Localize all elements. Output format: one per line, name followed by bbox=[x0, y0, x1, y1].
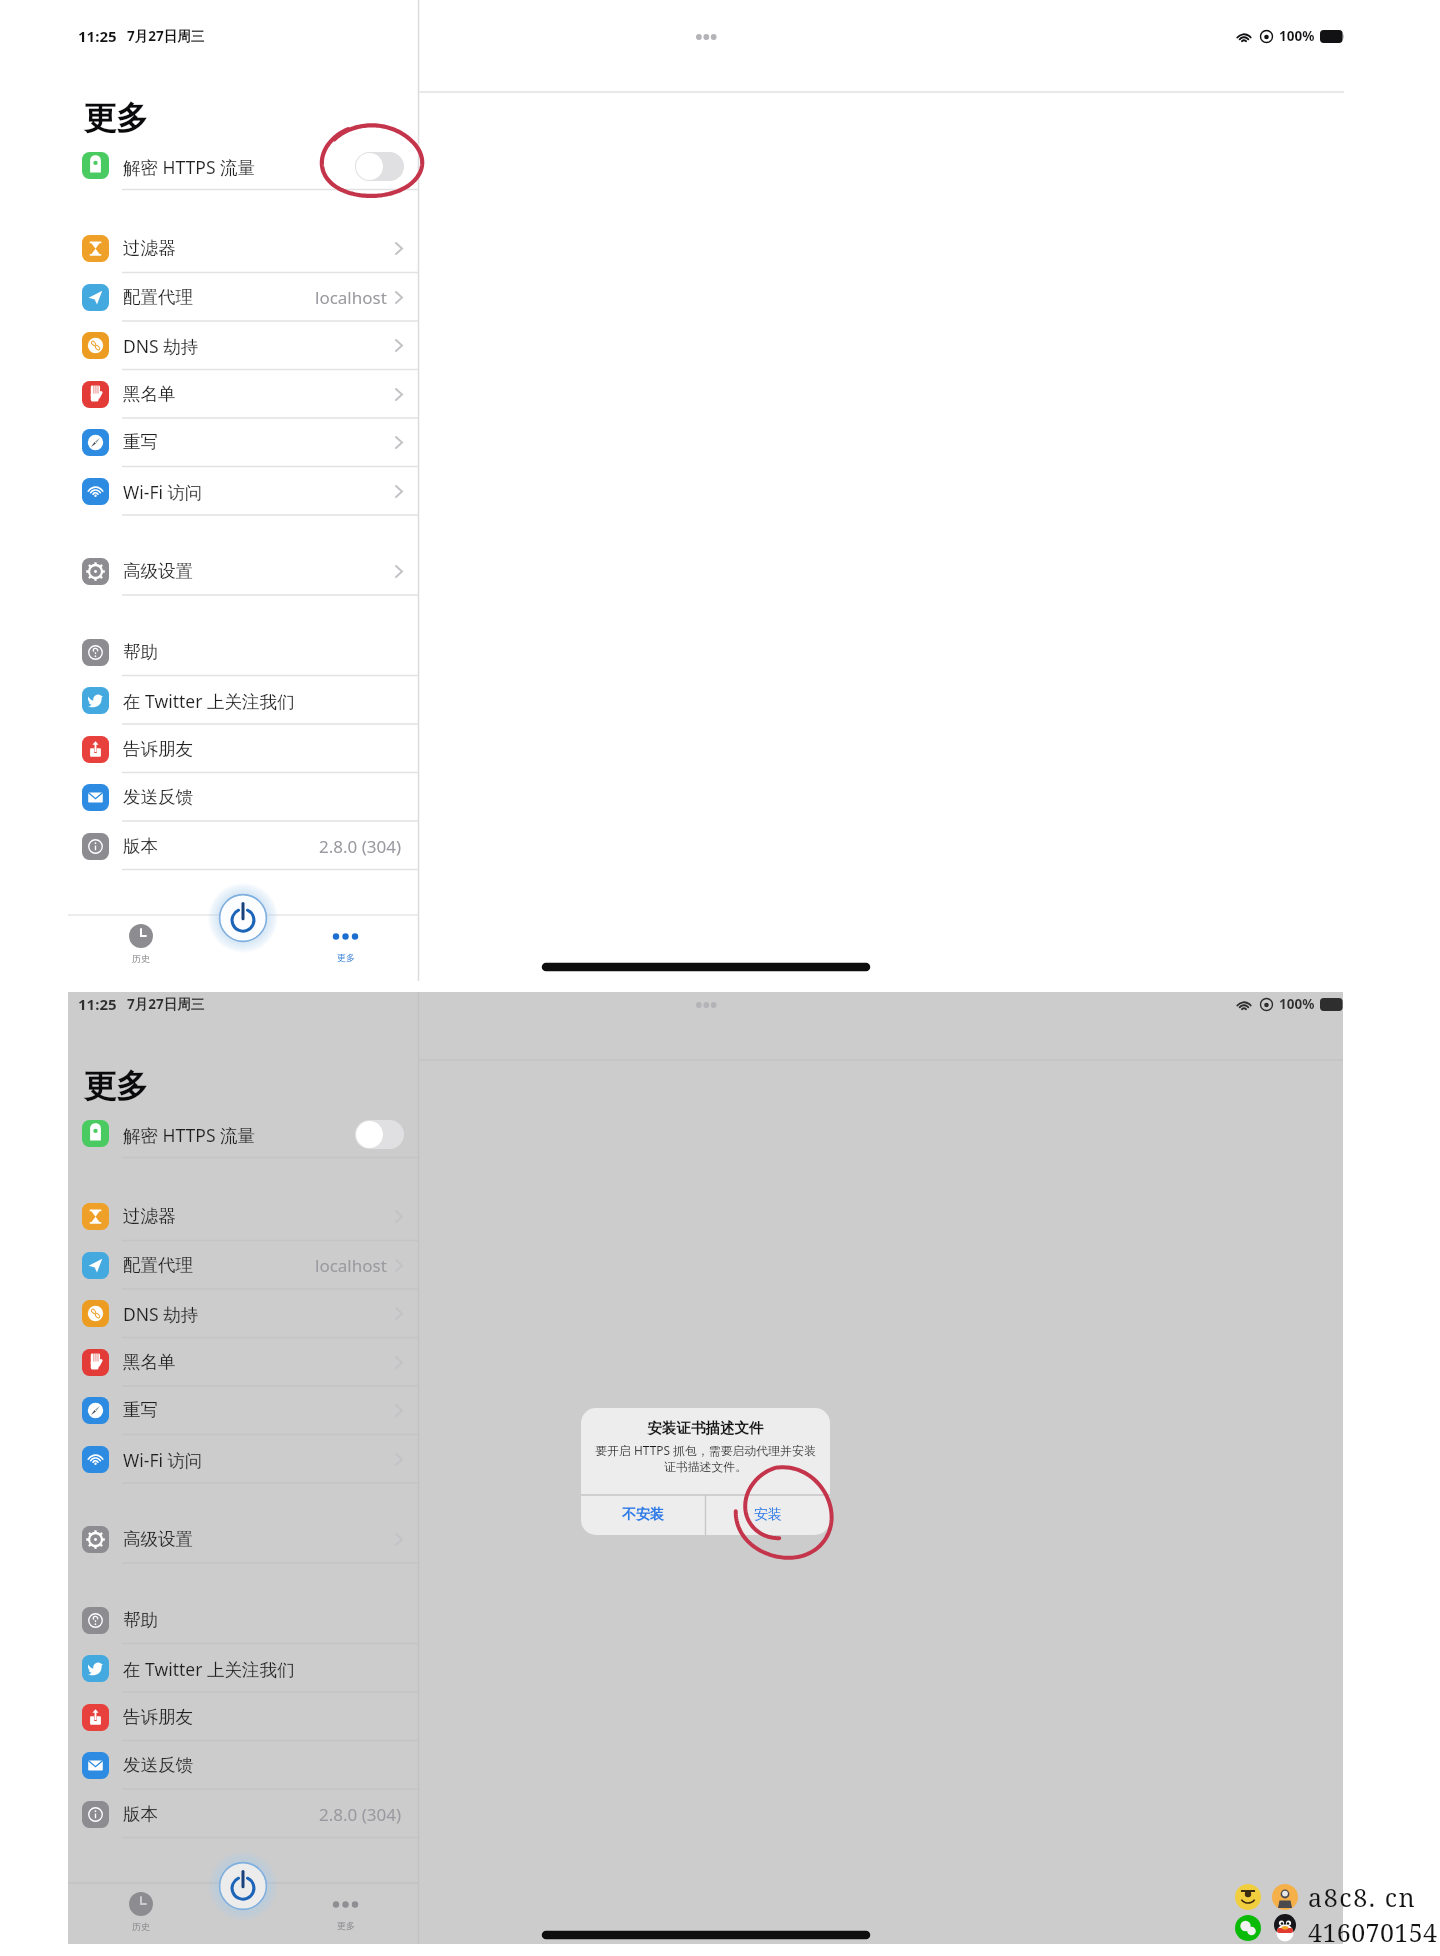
button[interactable]: 过滤器 bbox=[68, 1193, 418, 1239]
button[interactable]: 解密 HTTPS 流量 开关 bbox=[68, 143, 418, 189]
button[interactable]: 黑名单 bbox=[68, 1339, 418, 1385]
staticText: Wi-Fi 访问 bbox=[123, 1448, 203, 1472]
button[interactable]: 安装 bbox=[705, 1495, 830, 1535]
staticText: 416070154 bbox=[1308, 1915, 1438, 1949]
button[interactable]: 发送反馈 bbox=[68, 774, 418, 820]
button[interactable]: 历史 bbox=[82, 914, 200, 972]
button[interactable]: 高级设置 bbox=[68, 1516, 418, 1562]
button[interactable]: 重写 bbox=[68, 1387, 418, 1433]
staticText: 版本 bbox=[123, 835, 158, 857]
staticText: 告诉朋友 bbox=[123, 738, 193, 760]
button[interactable]: 帮助 bbox=[68, 1597, 418, 1643]
staticText: 版本 bbox=[123, 1803, 158, 1825]
staticText: 高级设置 bbox=[123, 560, 193, 582]
button[interactable]: 配置代理 bbox=[68, 1242, 418, 1288]
button[interactable]: Wi-Fi 访问 bbox=[68, 1436, 418, 1482]
staticText: 配置代理 bbox=[123, 286, 193, 308]
staticText: 帮助 bbox=[123, 641, 158, 663]
button[interactable]: 更多 bbox=[286, 916, 404, 974]
staticText: 高级设置 bbox=[123, 1528, 193, 1550]
staticText: 要开启 HTTPS 抓包，需要启动代理并安装证书描述文件。 bbox=[591, 1442, 820, 1474]
button[interactable]: 告诉朋友 bbox=[68, 1694, 418, 1740]
staticText: 解密 HTTPS 流量 bbox=[123, 155, 256, 179]
staticText: localhost bbox=[315, 286, 387, 309]
staticText: 黑名单 bbox=[123, 1351, 176, 1373]
staticText: 7月27日周三 bbox=[127, 995, 205, 1013]
staticText: 黑名单 bbox=[123, 383, 176, 405]
button[interactable]: 帮助 bbox=[68, 629, 418, 675]
button[interactable]: 高级设置 bbox=[68, 548, 418, 594]
staticText: 配置代理 bbox=[123, 1254, 193, 1276]
button[interactable]: 版本 bbox=[68, 1791, 418, 1837]
staticText: 过滤器 bbox=[123, 237, 176, 259]
button[interactable]: 解密 HTTPS 流量 开关 bbox=[68, 1111, 418, 1157]
staticText: 过滤器 bbox=[123, 1205, 176, 1227]
staticText: 2.8.0 (304) bbox=[319, 835, 402, 858]
staticText: 不安装 bbox=[622, 1506, 664, 1524]
staticText: 安装证书描述文件 bbox=[581, 1419, 830, 1437]
button[interactable]: 历史 bbox=[82, 1882, 200, 1940]
staticText: 2.8.0 (304) bbox=[319, 1803, 402, 1826]
staticText: 帮助 bbox=[123, 1609, 158, 1631]
button[interactable]: 在 Twitter 上关注我们 bbox=[68, 1645, 418, 1691]
button[interactable]: 电源开关 bbox=[207, 1850, 279, 1922]
button[interactable]: 发送反馈 bbox=[68, 1742, 418, 1788]
button[interactable]: 配置代理 bbox=[68, 274, 418, 320]
staticText: a8c8. cn bbox=[1308, 1880, 1417, 1914]
staticText: DNS 劫持 bbox=[123, 334, 199, 358]
staticText: localhost bbox=[315, 1254, 387, 1277]
staticText: 解密 HTTPS 流量 bbox=[123, 1123, 256, 1147]
button[interactable]: 不安装 bbox=[581, 1495, 705, 1535]
button[interactable]: 版本 bbox=[68, 823, 418, 869]
button[interactable]: DNS 劫持 bbox=[68, 322, 418, 368]
staticText: 重写 bbox=[123, 431, 158, 453]
staticText: 历史 bbox=[132, 1921, 150, 1932]
staticText: 安装 bbox=[754, 1506, 782, 1524]
button[interactable]: 更多 bbox=[286, 1884, 404, 1942]
staticText: DNS 劫持 bbox=[123, 1302, 199, 1326]
button[interactable]: 告诉朋友 bbox=[68, 726, 418, 772]
staticText: 发送反馈 bbox=[123, 786, 193, 808]
staticText: 在 Twitter 上关注我们 bbox=[123, 689, 295, 713]
staticText: 告诉朋友 bbox=[123, 1706, 193, 1728]
button[interactable]: 重写 bbox=[68, 419, 418, 465]
staticText: 发送反馈 bbox=[123, 1754, 193, 1776]
staticText: 更多 bbox=[337, 952, 355, 963]
button[interactable]: DNS 劫持 bbox=[68, 1290, 418, 1336]
button[interactable]: 过滤器 bbox=[68, 225, 418, 271]
staticText: 100% bbox=[1279, 27, 1315, 45]
staticText: 更多 bbox=[84, 98, 148, 138]
button[interactable]: Wi-Fi 访问 bbox=[68, 468, 418, 514]
button[interactable]: 电源开关 bbox=[207, 882, 279, 954]
staticText: 11:25 bbox=[78, 26, 117, 46]
staticText: 7月27日周三 bbox=[127, 27, 205, 45]
staticText: 100% bbox=[1279, 995, 1315, 1013]
staticText: 11:25 bbox=[78, 994, 117, 1014]
staticText: Wi-Fi 访问 bbox=[123, 480, 203, 504]
button[interactable]: 黑名单 bbox=[68, 371, 418, 417]
staticText: 更多 bbox=[84, 1066, 148, 1106]
button[interactable]: 在 Twitter 上关注我们 bbox=[68, 677, 418, 723]
staticText: 重写 bbox=[123, 1399, 158, 1421]
staticText: 更多 bbox=[337, 1920, 355, 1931]
staticText: 在 Twitter 上关注我们 bbox=[123, 1657, 295, 1681]
staticText: 历史 bbox=[132, 953, 150, 964]
